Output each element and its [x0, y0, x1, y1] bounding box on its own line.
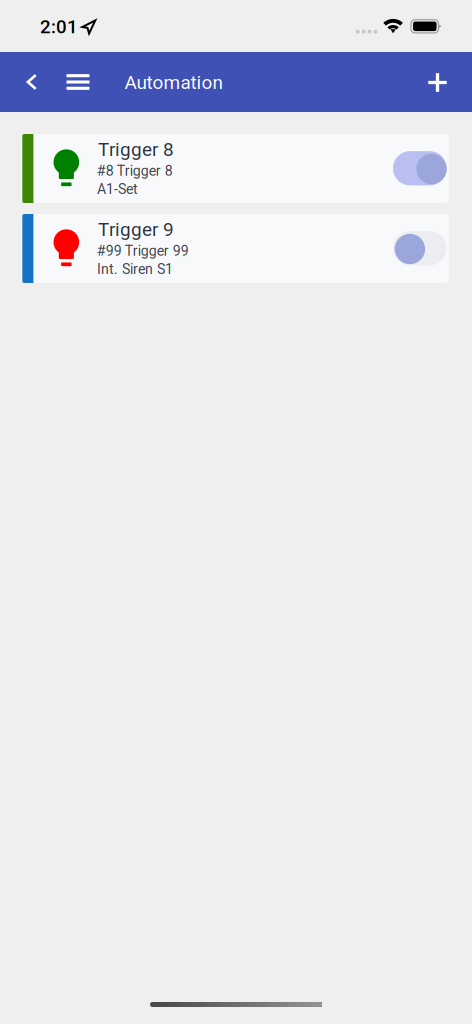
button[interactable]: Trigger 8 [21, 134, 449, 203]
staticText: 2:01 [40, 16, 78, 38]
staticText: Int. Siren S1 [97, 261, 173, 278]
staticText: Automation [124, 71, 222, 94]
staticText: #8 Trigger 8 [97, 163, 173, 179]
staticText: A1-Set [97, 181, 138, 198]
button[interactable]: Menu [55, 54, 101, 110]
button[interactable]: Back [14, 54, 48, 110]
button[interactable]: Add [412, 54, 462, 110]
staticText: Trigger 9 [98, 218, 174, 241]
staticText: Trigger 8 [98, 138, 174, 161]
staticText: #99 Trigger 99 [97, 243, 189, 259]
button[interactable]: Trigger 9 [21, 214, 449, 283]
